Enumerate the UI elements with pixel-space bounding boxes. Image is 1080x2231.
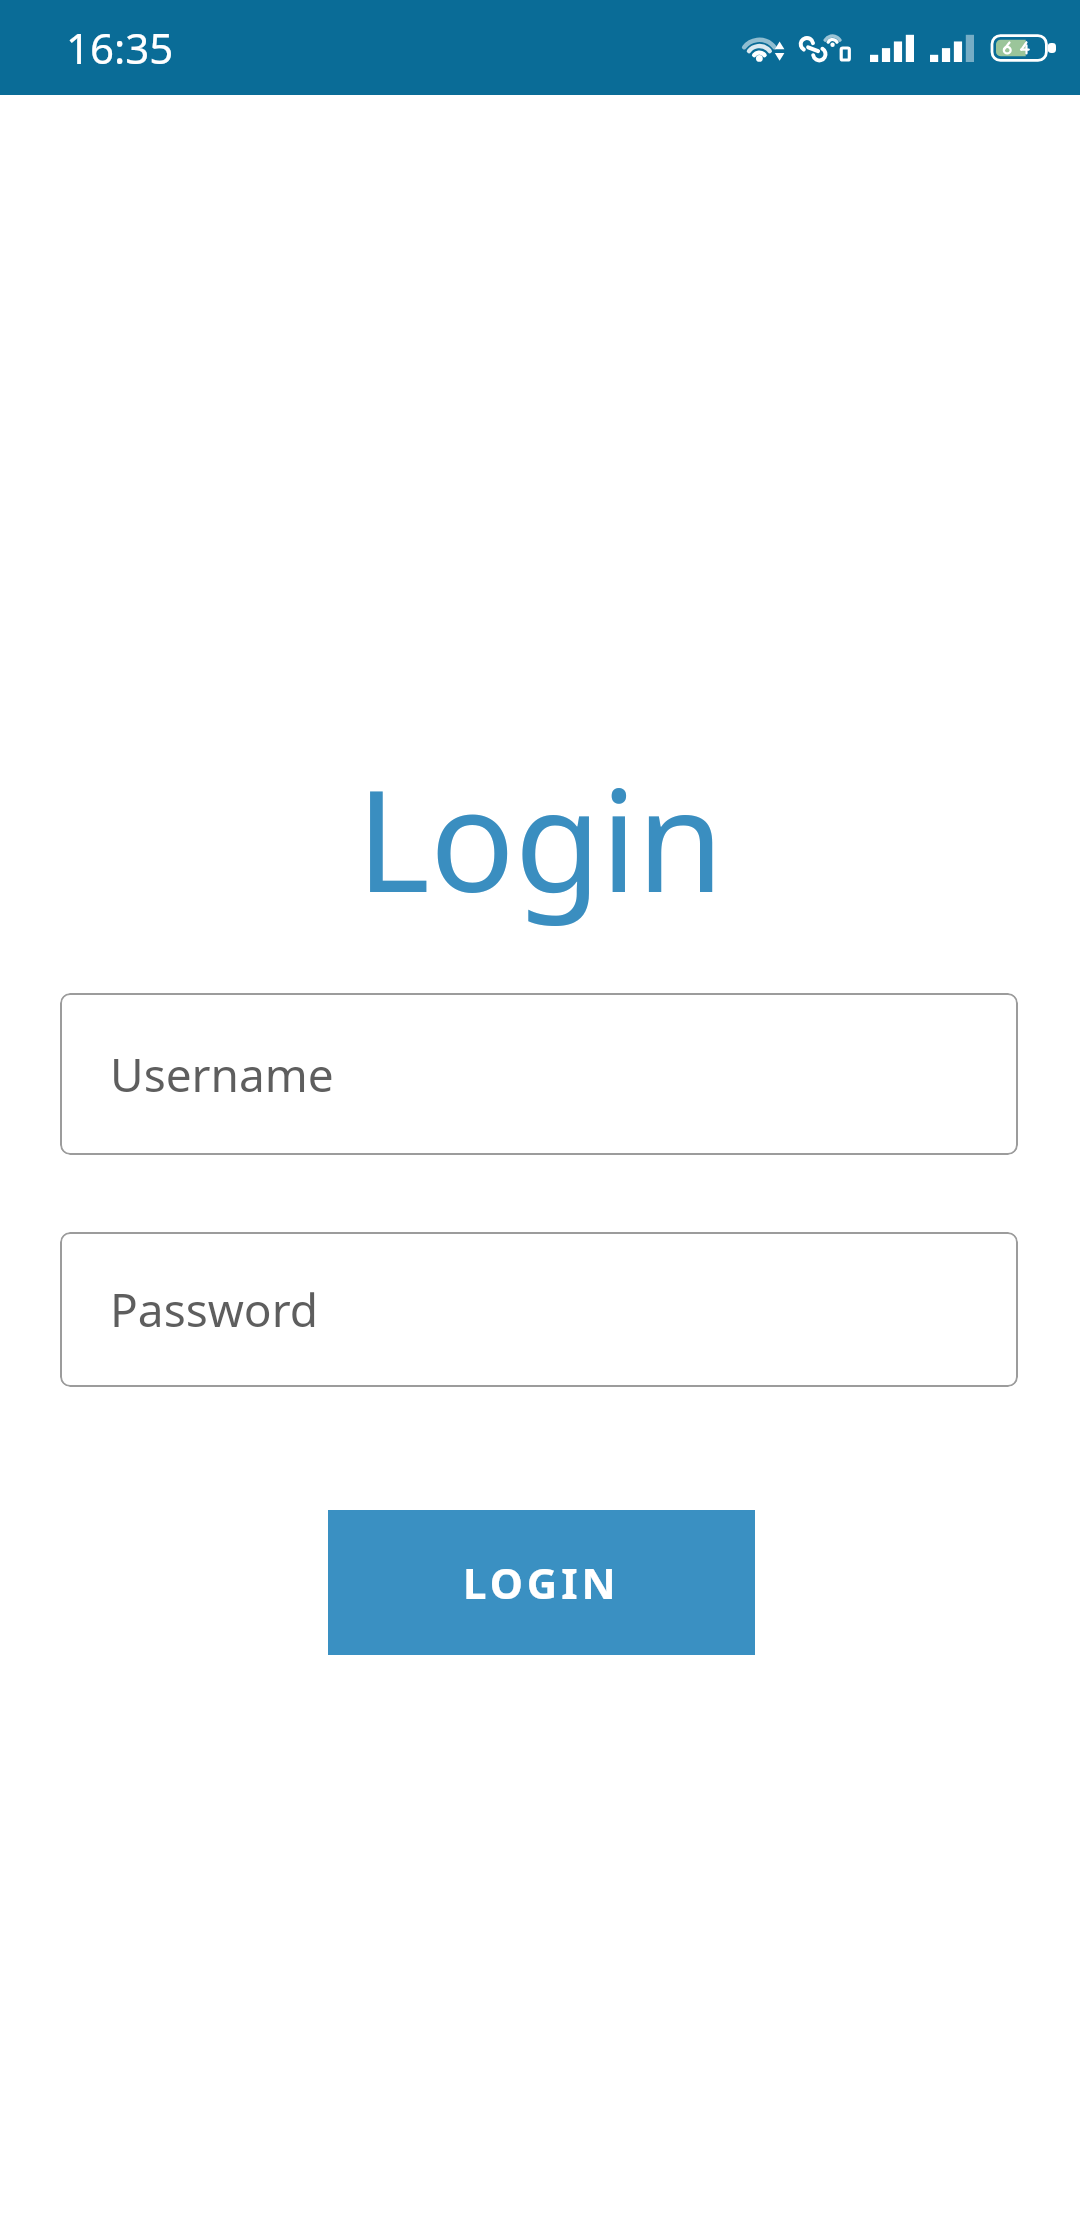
staticText: LOGIN — [463, 1554, 620, 1611]
staticText: Login — [0, 742, 1080, 933]
other: Wi-Fi calling — [798, 28, 852, 68]
button[interactable]: Username — [60, 993, 1018, 1155]
other: Battery 64 percent — [992, 28, 1056, 68]
staticText: Username — [110, 1043, 334, 1106]
staticText: Password — [110, 1278, 319, 1341]
button[interactable]: Password — [60, 1232, 1018, 1387]
other: Wi-Fi — [740, 28, 784, 68]
staticText: 16:35 — [66, 19, 174, 76]
button[interactable]: LOGIN — [328, 1510, 755, 1655]
other: Signal SIM 2 — [930, 28, 974, 68]
other: Signal SIM 1 — [870, 28, 914, 68]
